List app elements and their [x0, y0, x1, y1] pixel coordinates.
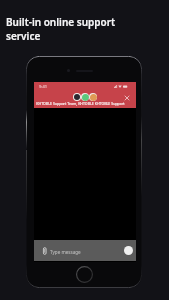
- button[interactable]: Send message: [124, 246, 133, 255]
- staticText: KHTOBLE Support Team, KHTOBLE KHTOBLE Su…: [34, 101, 127, 106]
- button[interactable]: Attach file: [34, 240, 136, 261]
- button[interactable]: Close chat: [122, 93, 131, 102]
- other: Attach file: [41, 247, 49, 255]
- staticText: Built-in online support service: [6, 15, 116, 43]
- staticText: 9:41: [39, 84, 47, 89]
- staticText: Type message: [50, 249, 81, 255]
